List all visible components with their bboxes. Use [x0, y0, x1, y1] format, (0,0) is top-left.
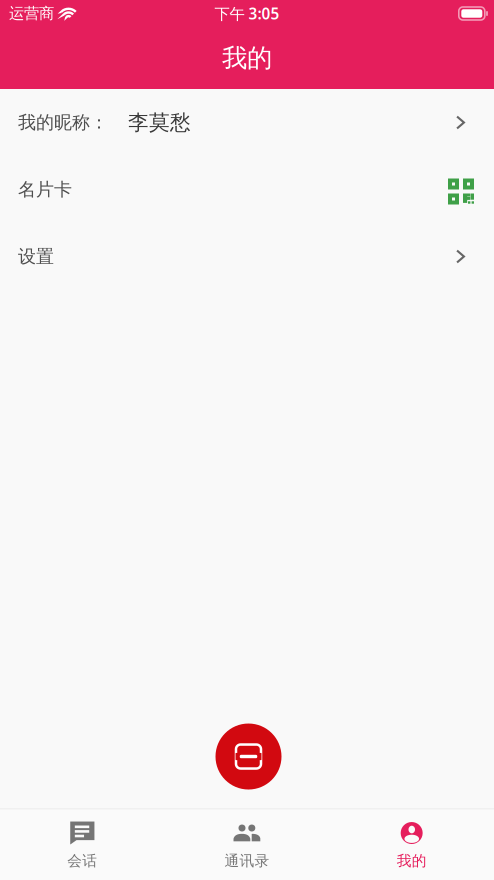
staticText: 设置 — [18, 245, 54, 268]
staticText: 我的昵称： — [18, 111, 108, 134]
staticText: 下午 3:05 — [214, 3, 279, 24]
staticText: 通讯录 — [224, 851, 269, 870]
staticText: 名片卡 — [18, 178, 72, 201]
button[interactable]: 新建 — [215, 723, 281, 789]
button[interactable]: 我的 — [329, 821, 494, 870]
button[interactable]: 会话 — [0, 821, 165, 870]
button[interactable]: 通讯录 — [165, 821, 329, 870]
staticText: 我的 — [397, 851, 427, 870]
staticText: 我的 — [222, 42, 272, 74]
button[interactable]: 我的昵称： — [0, 89, 494, 156]
staticText: 会话 — [67, 851, 97, 870]
button[interactable]: 设置 — [0, 223, 494, 290]
staticText: 运营商 — [9, 4, 54, 23]
button[interactable]: 名片卡 — [0, 156, 494, 223]
staticText: 李莫愁 — [128, 109, 191, 135]
